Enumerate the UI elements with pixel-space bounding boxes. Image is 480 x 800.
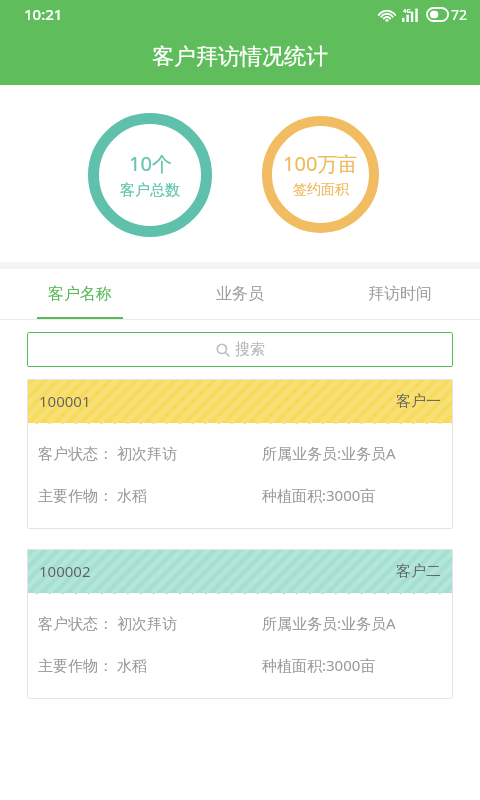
staticText: 客户拜访情况统计 (152, 43, 328, 71)
staticText: 主要作物： 水稻 (38, 655, 262, 675)
button[interactable]: 10个 (88, 113, 212, 237)
button[interactable]: 搜索 (27, 332, 453, 367)
staticText: 100万亩 (283, 150, 358, 177)
staticText: 拜访时间 (368, 284, 432, 304)
staticText: 客户名称 (48, 284, 112, 304)
button[interactable]: 100万亩 (262, 116, 379, 233)
staticText: 72 (451, 5, 468, 24)
staticText: 所属业务员:业务员A (262, 443, 396, 463)
staticText: 客户状态： 初次拜访 (38, 613, 262, 633)
staticText: 4G (403, 7, 411, 15)
staticText: 10:21 (24, 4, 63, 24)
staticText: 客户总数 (120, 181, 180, 200)
button[interactable]: 100001 (27, 379, 453, 529)
staticText: 客户一 (396, 392, 441, 411)
staticText: 所属业务员:业务员A (262, 613, 396, 633)
button[interactable]: 业务员 (160, 269, 320, 319)
staticText: 主要作物： 水稻 (38, 485, 262, 505)
button[interactable]: 100002 (27, 549, 453, 699)
staticText: 100001 (39, 391, 91, 411)
staticText: 100002 (39, 561, 91, 581)
button[interactable]: 客户名称 (0, 269, 160, 319)
staticText: 种植面积:3000亩 (262, 485, 376, 505)
staticText: 客户二 (396, 562, 441, 581)
staticText: 签约面积 (293, 181, 349, 199)
staticText: 10个 (129, 150, 172, 177)
button[interactable]: 拜访时间 (320, 269, 480, 319)
staticText: 业务员 (216, 284, 264, 304)
staticText: 客户状态： 初次拜访 (38, 443, 262, 463)
staticText: 搜索 (235, 340, 265, 359)
staticText: 种植面积:3000亩 (262, 655, 376, 675)
